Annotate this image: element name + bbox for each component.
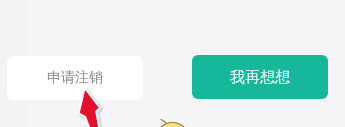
button[interactable]: 申请注销 [7,56,143,100]
staticText: 申请注销 [47,69,103,87]
button[interactable]: 我再想想 [192,55,328,99]
staticText: 我再想想 [230,68,290,87]
